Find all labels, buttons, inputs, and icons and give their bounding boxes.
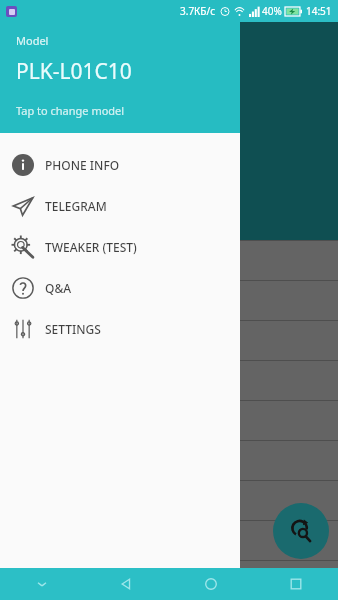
button[interactable]: SETTINGS (0, 308, 240, 349)
button[interactable]: Model (0, 0, 240, 133)
button[interactable]: Recents (253, 568, 338, 600)
button[interactable]: PHONE INFO (0, 144, 240, 185)
button[interactable]: TELEGRAM (0, 185, 240, 226)
staticText: Q&A (45, 280, 72, 296)
staticText: TWEAKER (TEST) (45, 239, 137, 255)
button[interactable]: Q&A (0, 267, 240, 308)
button[interactable]: TWEAKER (TEST) (0, 226, 240, 267)
staticText: 40% (262, 4, 282, 18)
button[interactable]: Hide keyboard (0, 568, 84, 600)
button[interactable]: Scan (273, 503, 329, 559)
staticText: Model (16, 33, 49, 48)
staticText: PHONE INFO (45, 157, 120, 173)
button[interactable]: Home (168, 568, 253, 600)
button[interactable]: Back (84, 568, 168, 600)
staticText: PLK-L01C10 (16, 57, 132, 86)
staticText: SETTINGS (45, 321, 101, 337)
staticText: 14:51 (306, 4, 332, 18)
staticText: TELEGRAM (45, 198, 107, 214)
staticText: 3.7КБ/с (180, 4, 216, 18)
staticText: Tap to change model (16, 103, 125, 118)
